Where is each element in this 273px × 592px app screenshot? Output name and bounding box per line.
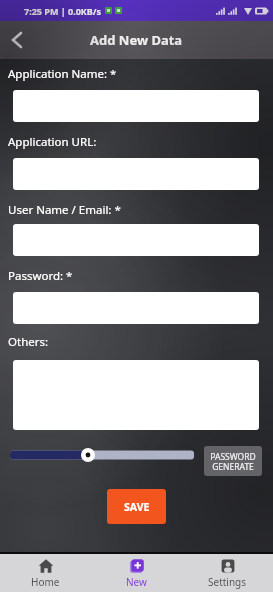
button[interactable]: New xyxy=(91,554,182,592)
button[interactable] xyxy=(13,90,259,122)
button[interactable]: Settings xyxy=(182,554,273,592)
staticText: Others: xyxy=(8,334,49,350)
staticText: PASSWORD GENERATE xyxy=(210,451,256,472)
staticText: Add New Data xyxy=(90,31,183,49)
staticText: Home xyxy=(31,575,60,589)
staticText: SAVE xyxy=(124,500,150,514)
button[interactable] xyxy=(13,292,259,324)
button[interactable]: PASSWORD GENERATE xyxy=(204,446,262,476)
staticText: Application URL: xyxy=(8,134,97,150)
staticText: 7:25 PM | 0.0KB/s xyxy=(24,5,102,17)
button[interactable] xyxy=(13,360,259,430)
button[interactable] xyxy=(13,224,259,256)
staticText: Settings xyxy=(208,575,247,589)
staticText: Application Name: * xyxy=(8,66,117,82)
button[interactable]: SAVE xyxy=(107,489,166,524)
staticText: Password: * xyxy=(8,268,73,284)
button[interactable] xyxy=(6,28,30,52)
button[interactable]: Home xyxy=(0,554,91,592)
button[interactable] xyxy=(13,158,259,190)
staticText: New xyxy=(126,575,147,589)
staticText: User Name / Email: * xyxy=(8,202,121,218)
button[interactable] xyxy=(10,440,194,468)
